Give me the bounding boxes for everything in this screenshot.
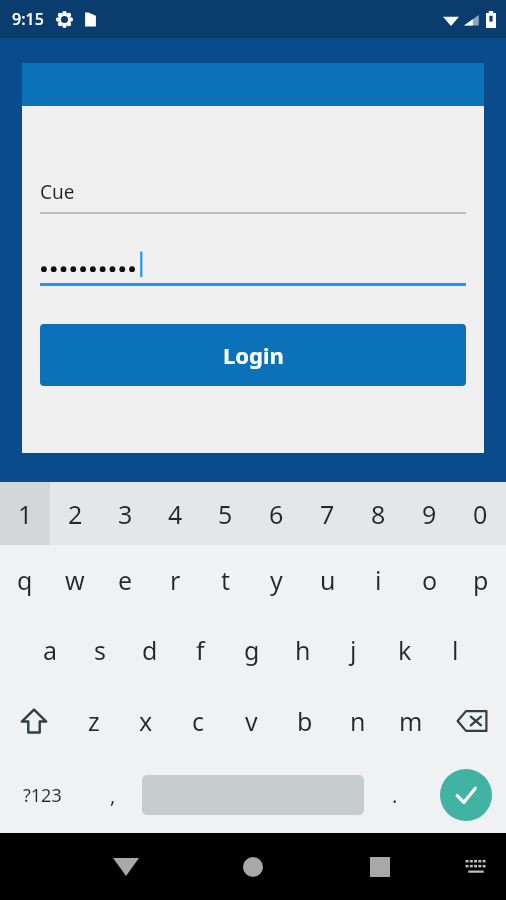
button[interactable]: 1: [0, 482, 50, 545]
staticText: g: [244, 633, 260, 667]
staticText: Cue: [40, 179, 75, 205]
button[interactable]: e: [100, 545, 150, 615]
button[interactable]: Recent apps: [350, 837, 410, 897]
button[interactable]: Cue: [40, 179, 466, 214]
button[interactable]: s: [75, 615, 125, 685]
button[interactable]: .: [364, 757, 426, 833]
staticText: c: [192, 704, 205, 738]
button[interactable]: k: [379, 615, 430, 685]
button[interactable]: i: [353, 545, 404, 615]
staticText: Login: [223, 340, 284, 370]
staticText: 2: [68, 497, 83, 531]
button[interactable]: f: [175, 615, 226, 685]
staticText: k: [398, 633, 412, 667]
button[interactable]: ,: [84, 757, 142, 833]
staticText: q: [17, 563, 33, 597]
staticText: 9:15: [12, 8, 44, 30]
button[interactable]: ?123: [0, 757, 84, 833]
staticText: z: [88, 704, 100, 738]
button[interactable]: a: [25, 615, 75, 685]
button[interactable]: r: [150, 545, 200, 615]
button[interactable]: d: [125, 615, 175, 685]
staticText: o: [422, 563, 438, 597]
staticText: y: [270, 563, 283, 597]
staticText: 8: [371, 497, 386, 531]
button[interactable]: 4: [150, 482, 200, 545]
button[interactable]: Back: [96, 837, 156, 897]
button[interactable]: x: [120, 685, 172, 757]
staticText: b: [297, 704, 313, 738]
button[interactable]: Backspace: [437, 685, 506, 757]
button[interactable]: g: [226, 615, 277, 685]
staticText: i: [375, 563, 382, 597]
button[interactable]: z: [68, 685, 120, 757]
staticText: .: [392, 782, 398, 809]
staticText: h: [295, 633, 311, 667]
button[interactable]: Home: [223, 837, 283, 897]
staticText: t: [221, 563, 231, 597]
staticText: s: [94, 633, 106, 667]
staticText: r: [170, 563, 181, 597]
staticText: 7: [320, 497, 335, 531]
button[interactable]: 8: [353, 482, 404, 545]
staticText: v: [245, 704, 258, 738]
staticText: 1: [18, 497, 33, 531]
button[interactable]: 0: [455, 482, 506, 545]
button[interactable]: 5: [200, 482, 251, 545]
staticText: 6: [269, 497, 284, 531]
button[interactable]: Enter: [440, 769, 492, 821]
button[interactable]: y: [251, 545, 302, 615]
button[interactable]: Switch keyboard: [450, 841, 502, 893]
button[interactable]: v: [225, 685, 278, 757]
staticText: n: [350, 704, 366, 738]
staticText: j: [350, 633, 357, 667]
button[interactable]: 6: [251, 482, 302, 545]
button[interactable]: w: [50, 545, 100, 615]
staticText: f: [196, 633, 205, 667]
button[interactable]: q: [0, 545, 50, 615]
button[interactable]: l: [430, 615, 481, 685]
button[interactable]: h: [277, 615, 328, 685]
button[interactable]: o: [404, 545, 455, 615]
button[interactable]: 2: [50, 482, 100, 545]
staticText: x: [139, 704, 153, 738]
staticText: 3: [118, 497, 133, 531]
staticText: a: [43, 633, 58, 667]
staticText: ,: [110, 782, 116, 809]
staticText: e: [118, 563, 133, 597]
button[interactable]: [40, 251, 466, 286]
button[interactable]: b: [278, 685, 331, 757]
staticText: m: [399, 704, 423, 738]
button[interactable]: 7: [302, 482, 353, 545]
staticText: ?123: [23, 783, 62, 808]
staticText: 9: [422, 497, 437, 531]
button[interactable]: j: [328, 615, 379, 685]
staticText: l: [452, 633, 459, 667]
staticText: p: [473, 563, 489, 597]
staticText: w: [65, 563, 85, 597]
button[interactable]: m: [384, 685, 437, 757]
staticText: u: [320, 563, 336, 597]
button[interactable]: n: [331, 685, 384, 757]
staticText: 4: [168, 497, 183, 531]
button[interactable]: 3: [100, 482, 150, 545]
button[interactable]: c: [172, 685, 225, 757]
staticText: d: [142, 633, 158, 667]
button[interactable]: u: [302, 545, 353, 615]
button[interactable]: t: [200, 545, 251, 615]
button[interactable]: Login: [40, 324, 466, 386]
button[interactable]: p: [455, 545, 506, 615]
button[interactable]: 9: [404, 482, 455, 545]
button[interactable]: Shift: [0, 685, 68, 757]
staticText: 0: [473, 497, 488, 531]
staticText: 5: [218, 497, 233, 531]
